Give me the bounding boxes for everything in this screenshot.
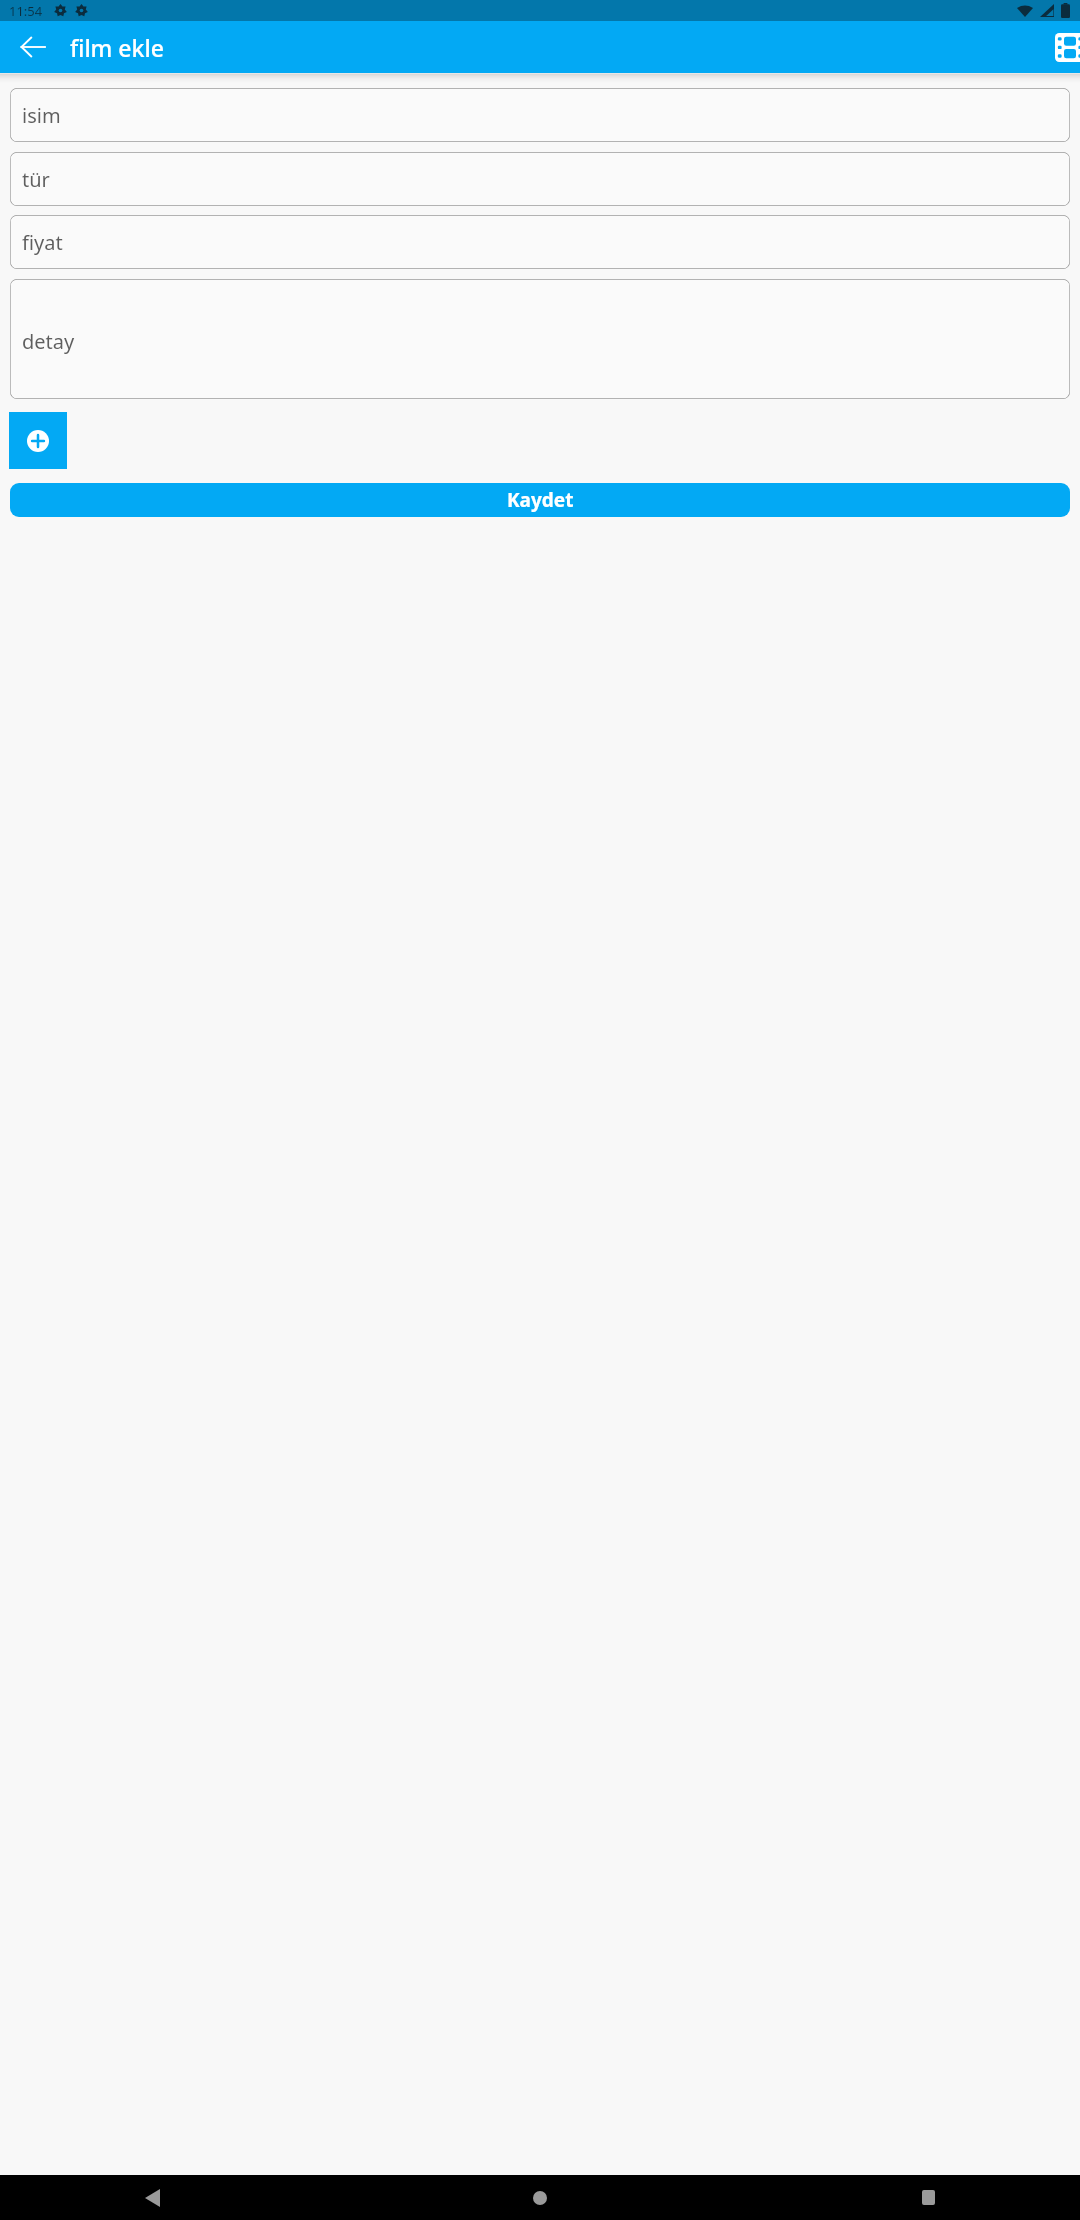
button[interactable]: tür: [10, 152, 1070, 206]
staticText: film ekle: [70, 32, 164, 63]
staticText: Kaydet: [507, 487, 574, 513]
button[interactable]: detay: [10, 279, 1070, 399]
button[interactable]: isim: [10, 88, 1070, 142]
button[interactable]: Kaydet: [10, 483, 1070, 517]
button[interactable]: fiyat: [10, 215, 1070, 269]
button[interactable]: Add image: [9, 412, 67, 469]
button[interactable]: Movies: [1046, 23, 1080, 71]
staticText: isim: [22, 102, 61, 129]
staticText: fiyat: [22, 229, 63, 256]
button[interactable]: Back: [77, 2175, 227, 2220]
staticText: detay: [22, 328, 75, 355]
button[interactable]: Home: [480, 2175, 600, 2220]
staticText: 11:54: [9, 2, 43, 20]
button[interactable]: Back: [9, 23, 57, 71]
button[interactable]: Recent apps: [853, 2175, 1003, 2220]
staticText: tür: [22, 166, 50, 193]
